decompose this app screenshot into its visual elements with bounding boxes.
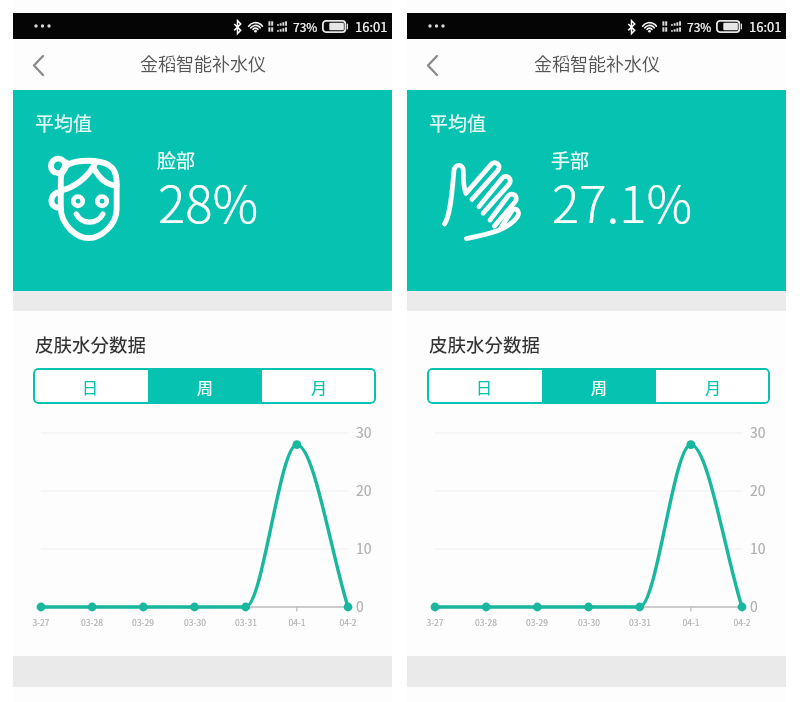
staticText: 04-2 xyxy=(332,616,364,628)
button[interactable]: 周 xyxy=(542,368,656,404)
staticText: 周 xyxy=(591,375,608,398)
staticText: 周 xyxy=(197,375,214,398)
staticText: 03-28 xyxy=(76,616,108,628)
staticText: 10 xyxy=(356,538,372,558)
staticText: 03-28 xyxy=(470,616,502,628)
button[interactable]: 周 xyxy=(148,368,262,404)
staticText: 3-27 xyxy=(25,616,57,628)
staticText: 3-27 xyxy=(419,616,451,628)
staticText: 金稻智能补水仪 xyxy=(140,50,266,76)
staticText: 平均值 xyxy=(429,109,487,137)
button[interactable]: 月 xyxy=(656,368,770,404)
staticText: 0 xyxy=(750,596,758,616)
staticText: 73% xyxy=(687,18,712,35)
staticText: 03-31 xyxy=(230,616,262,628)
button[interactable]: 日 xyxy=(33,368,148,404)
staticText: 03-29 xyxy=(127,616,159,628)
staticText: 皮肤水分数据 xyxy=(429,331,541,358)
staticText: 04-2 xyxy=(726,616,758,628)
button[interactable]: Back xyxy=(412,45,452,85)
staticText: 04-1 xyxy=(281,616,313,628)
staticText: 03-31 xyxy=(624,616,656,628)
staticText: 16:01 xyxy=(749,17,782,36)
staticText: 10 xyxy=(750,538,766,558)
staticText: 04-1 xyxy=(675,616,707,628)
staticText: 20 xyxy=(356,480,372,500)
staticText: 日 xyxy=(82,375,99,398)
staticText: 日 xyxy=(476,375,493,398)
staticText: 16:01 xyxy=(355,17,388,36)
staticText: 20 xyxy=(750,480,766,500)
staticText: 73% xyxy=(293,18,318,35)
staticText: 皮肤水分数据 xyxy=(35,331,147,358)
staticText: 平均值 xyxy=(35,109,93,137)
staticText: 金稻智能补水仪 xyxy=(534,50,660,76)
staticText: 03-30 xyxy=(179,616,211,628)
staticText: 脸部 xyxy=(157,146,196,174)
staticText: 30 xyxy=(750,422,766,442)
staticText: 0 xyxy=(356,596,364,616)
button[interactable]: 日 xyxy=(427,368,542,404)
staticText: 03-29 xyxy=(521,616,553,628)
staticText: 27.1% xyxy=(552,164,693,238)
staticText: 28% xyxy=(158,164,259,238)
staticText: 30 xyxy=(356,422,372,442)
staticText: 03-30 xyxy=(573,616,605,628)
staticText: 月 xyxy=(311,375,328,398)
staticText: 手部 xyxy=(551,146,590,174)
staticText: 月 xyxy=(705,375,722,398)
button[interactable]: Back xyxy=(18,45,58,85)
button[interactable]: 月 xyxy=(262,368,376,404)
